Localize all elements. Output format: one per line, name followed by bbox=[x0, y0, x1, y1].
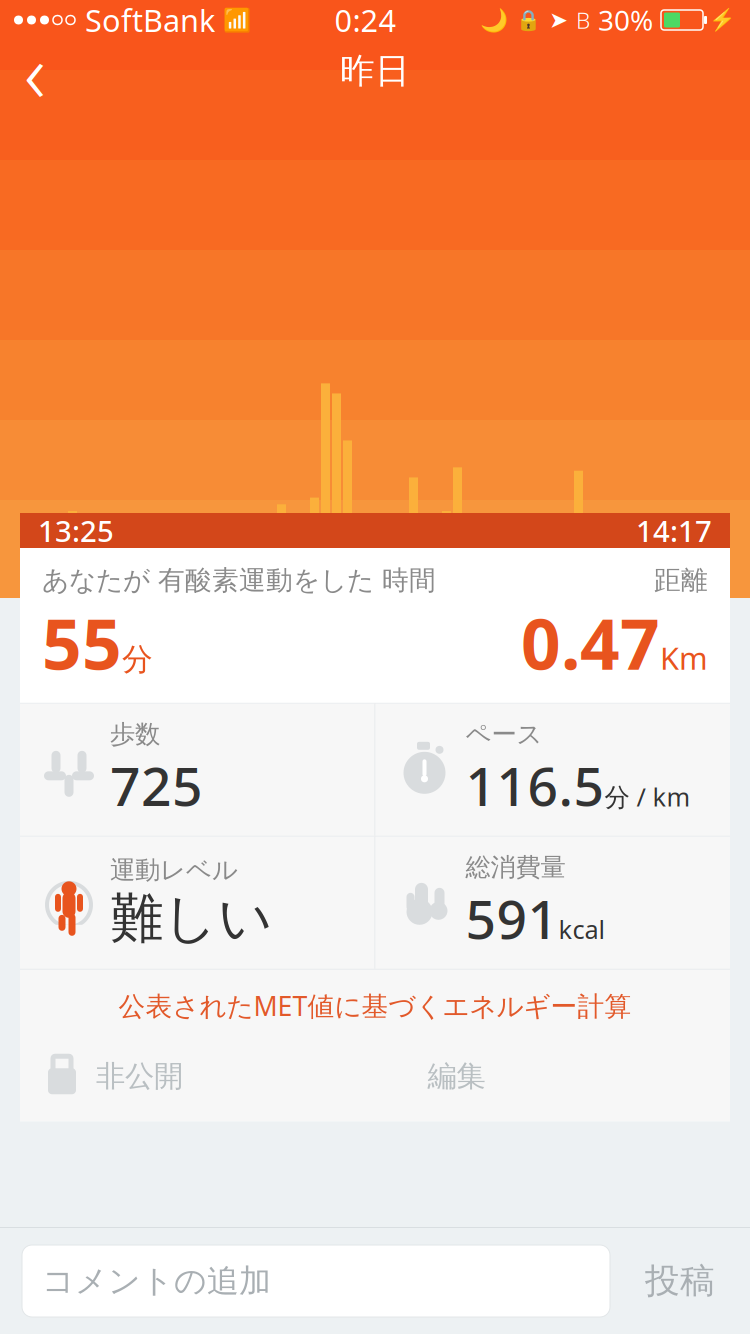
button[interactable]: ペース bbox=[375, 704, 730, 836]
staticText: 非公開 bbox=[96, 1058, 183, 1094]
staticText: 分 bbox=[122, 641, 153, 678]
staticText: 📶 bbox=[223, 7, 251, 33]
staticText: 55 bbox=[42, 597, 122, 689]
button[interactable]: 運動レベル bbox=[20, 837, 374, 969]
staticText: 投稿 bbox=[645, 1260, 715, 1302]
staticText: SoftBank bbox=[85, 0, 215, 40]
staticText: 116.5 bbox=[465, 750, 604, 821]
staticText: コメントの追加 bbox=[42, 1261, 271, 1301]
button[interactable]: 公表されたMET値に基づくエネルギー計算 bbox=[20, 970, 730, 1041]
staticText: 距離 bbox=[654, 564, 708, 597]
staticText: 難しい bbox=[110, 886, 273, 951]
staticText: 🔒 bbox=[516, 9, 541, 31]
staticText: 昨日 bbox=[340, 50, 410, 92]
staticText: 分 / km bbox=[604, 780, 690, 813]
staticText: 🌙 bbox=[480, 7, 508, 33]
staticText: 30% bbox=[598, 1, 653, 39]
button[interactable]: 総消費量 bbox=[375, 837, 730, 969]
button[interactable]: 歩数 bbox=[20, 704, 374, 836]
staticText: 13:25 bbox=[38, 511, 114, 550]
staticText: 運動レベル bbox=[110, 854, 238, 886]
staticText: 総消費量 bbox=[465, 852, 565, 883]
staticText: kcal bbox=[558, 912, 605, 946]
button[interactable]: 投稿 bbox=[610, 1245, 750, 1317]
staticText: Km bbox=[660, 637, 708, 678]
button[interactable]: 戻る bbox=[0, 40, 70, 102]
staticText: 725 bbox=[110, 750, 203, 821]
staticText: 編集 bbox=[427, 1058, 485, 1094]
button[interactable]: 非公開 bbox=[20, 1041, 183, 1111]
staticText: ⚡ bbox=[709, 8, 736, 32]
staticText: 歩数 bbox=[110, 719, 160, 750]
button[interactable]: 編集 bbox=[391, 1041, 521, 1111]
staticText: あなたが 有酸素運動をした 時間 bbox=[42, 564, 436, 597]
button[interactable]: コメントの追加 bbox=[22, 1245, 610, 1317]
staticText: 0.47 bbox=[521, 597, 660, 689]
staticText: 591 bbox=[465, 883, 558, 954]
staticText: ペース bbox=[465, 719, 542, 750]
staticText: B bbox=[576, 5, 590, 35]
staticText: 公表されたMET値に基づくエネルギー計算 bbox=[118, 988, 631, 1023]
staticText: ‹ bbox=[24, 16, 46, 126]
staticText: 0:24 bbox=[334, 0, 396, 40]
staticText: 14:17 bbox=[636, 511, 712, 550]
staticText: ➤ bbox=[549, 7, 568, 33]
